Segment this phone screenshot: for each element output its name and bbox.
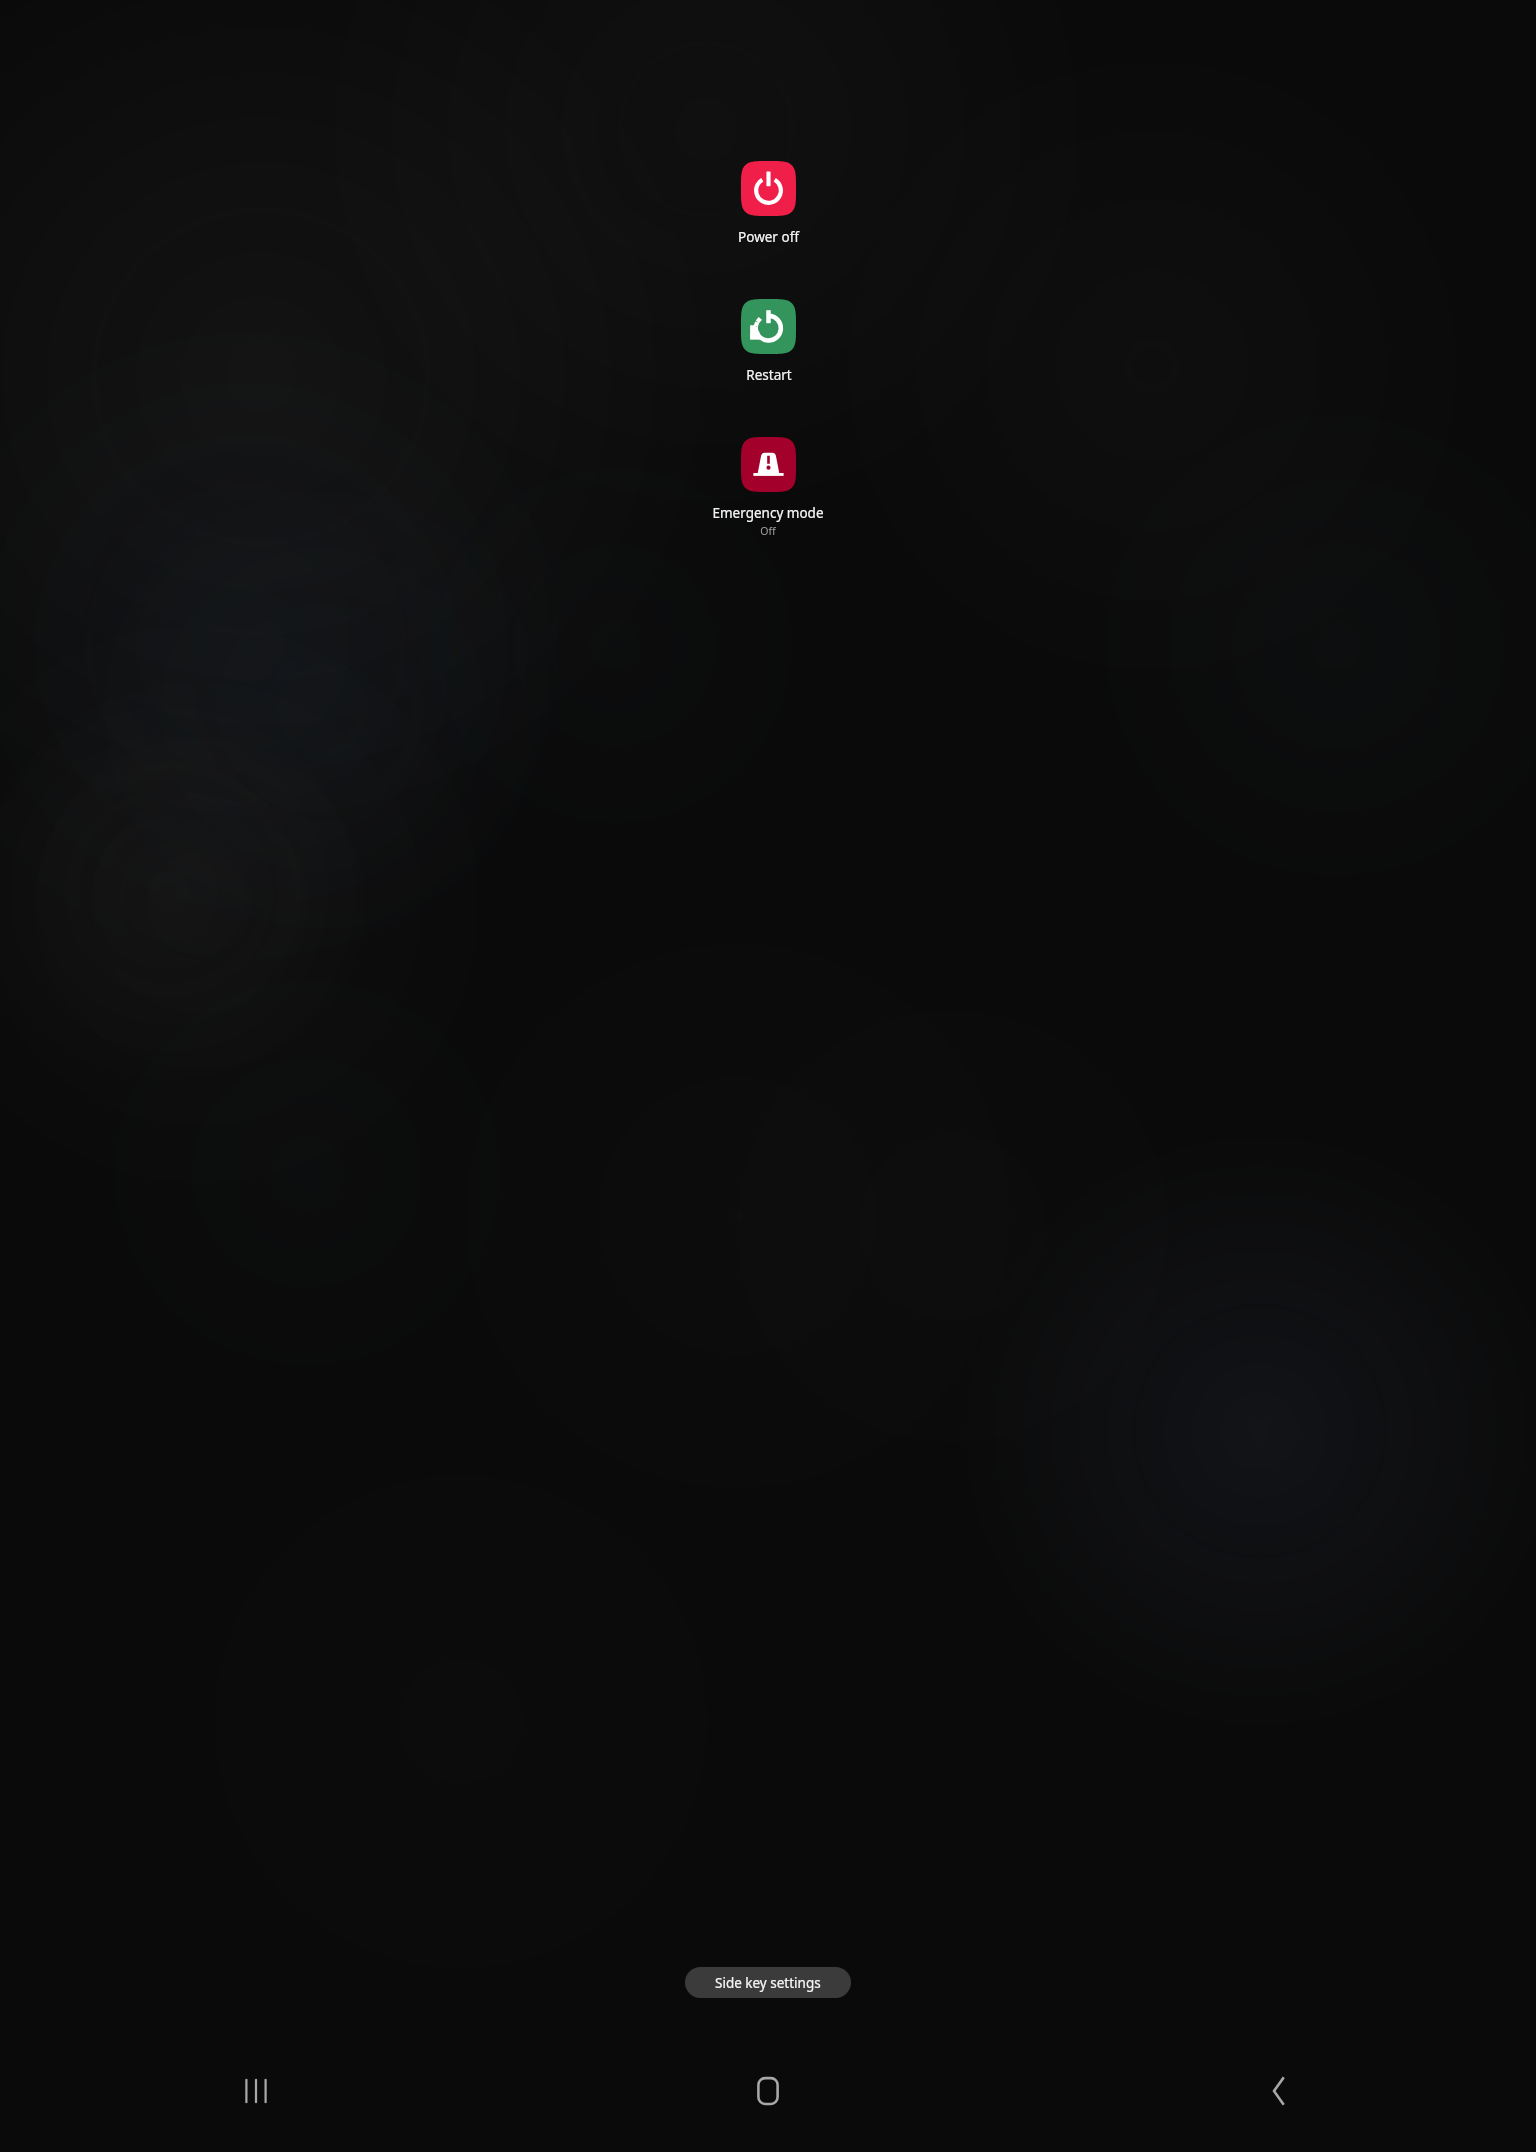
staticText: Restart xyxy=(746,366,792,384)
button[interactable]: Power off xyxy=(698,157,839,250)
staticText: Power off xyxy=(738,228,799,246)
staticText: Side key settings xyxy=(715,1974,821,1992)
button[interactable]: Side key settings xyxy=(685,1967,851,1998)
button[interactable]: Emergency mode, Off xyxy=(672,433,864,542)
button[interactable]: Restart xyxy=(701,295,836,388)
staticText: Emergency mode xyxy=(712,504,824,522)
staticText: Off xyxy=(760,524,776,538)
button[interactable]: Home xyxy=(512,2030,1024,2152)
button[interactable]: Recents xyxy=(0,2030,512,2152)
button[interactable]: Back xyxy=(1024,2030,1536,2152)
